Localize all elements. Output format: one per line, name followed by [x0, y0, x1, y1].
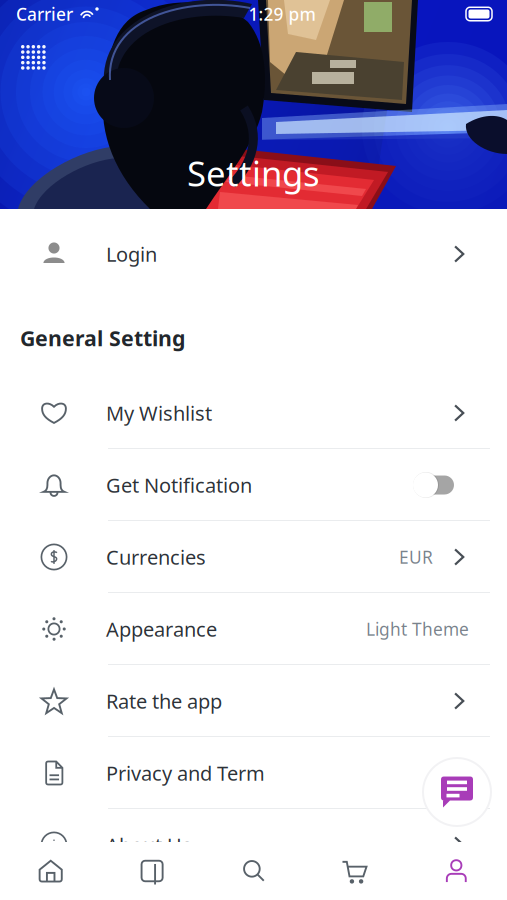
button[interactable]: Account — [406, 842, 507, 900]
button[interactable]: Login — [0, 209, 507, 299]
staticText: Currencies — [106, 544, 206, 570]
button[interactable]: Catalog — [101, 842, 203, 900]
button[interactable]: Home — [0, 842, 101, 900]
staticText: EUR — [399, 545, 433, 568]
staticText: Login — [106, 241, 157, 267]
button[interactable]: Search — [203, 842, 304, 900]
button[interactable]: About Us — [0, 809, 507, 881]
staticText: About Us — [106, 832, 192, 858]
button[interactable]: Chat — [422, 757, 492, 827]
button[interactable]: Rate the app — [0, 665, 507, 737]
staticText: General Setting — [20, 324, 185, 352]
button[interactable]: Cart — [304, 842, 406, 900]
staticText: My Wishlist — [106, 400, 212, 426]
staticText: Rate the app — [106, 688, 222, 714]
button[interactable]: Menu — [0, 28, 46, 70]
staticText: Carrier — [16, 2, 73, 25]
button[interactable]: My Wishlist — [0, 377, 507, 449]
button[interactable]: Currencies — [0, 521, 507, 593]
staticText: Appearance — [106, 616, 217, 642]
button[interactable]: Appearance — [0, 593, 507, 665]
staticText: Light Theme — [366, 617, 469, 640]
staticText: 1:29 pm — [248, 2, 315, 25]
button[interactable]: Privacy and Term — [0, 737, 507, 809]
button[interactable]: Get Notification — [0, 449, 507, 521]
staticText: Get Notification — [106, 472, 252, 498]
staticText: Settings — [187, 150, 320, 196]
staticText: Privacy and Term — [106, 760, 265, 786]
